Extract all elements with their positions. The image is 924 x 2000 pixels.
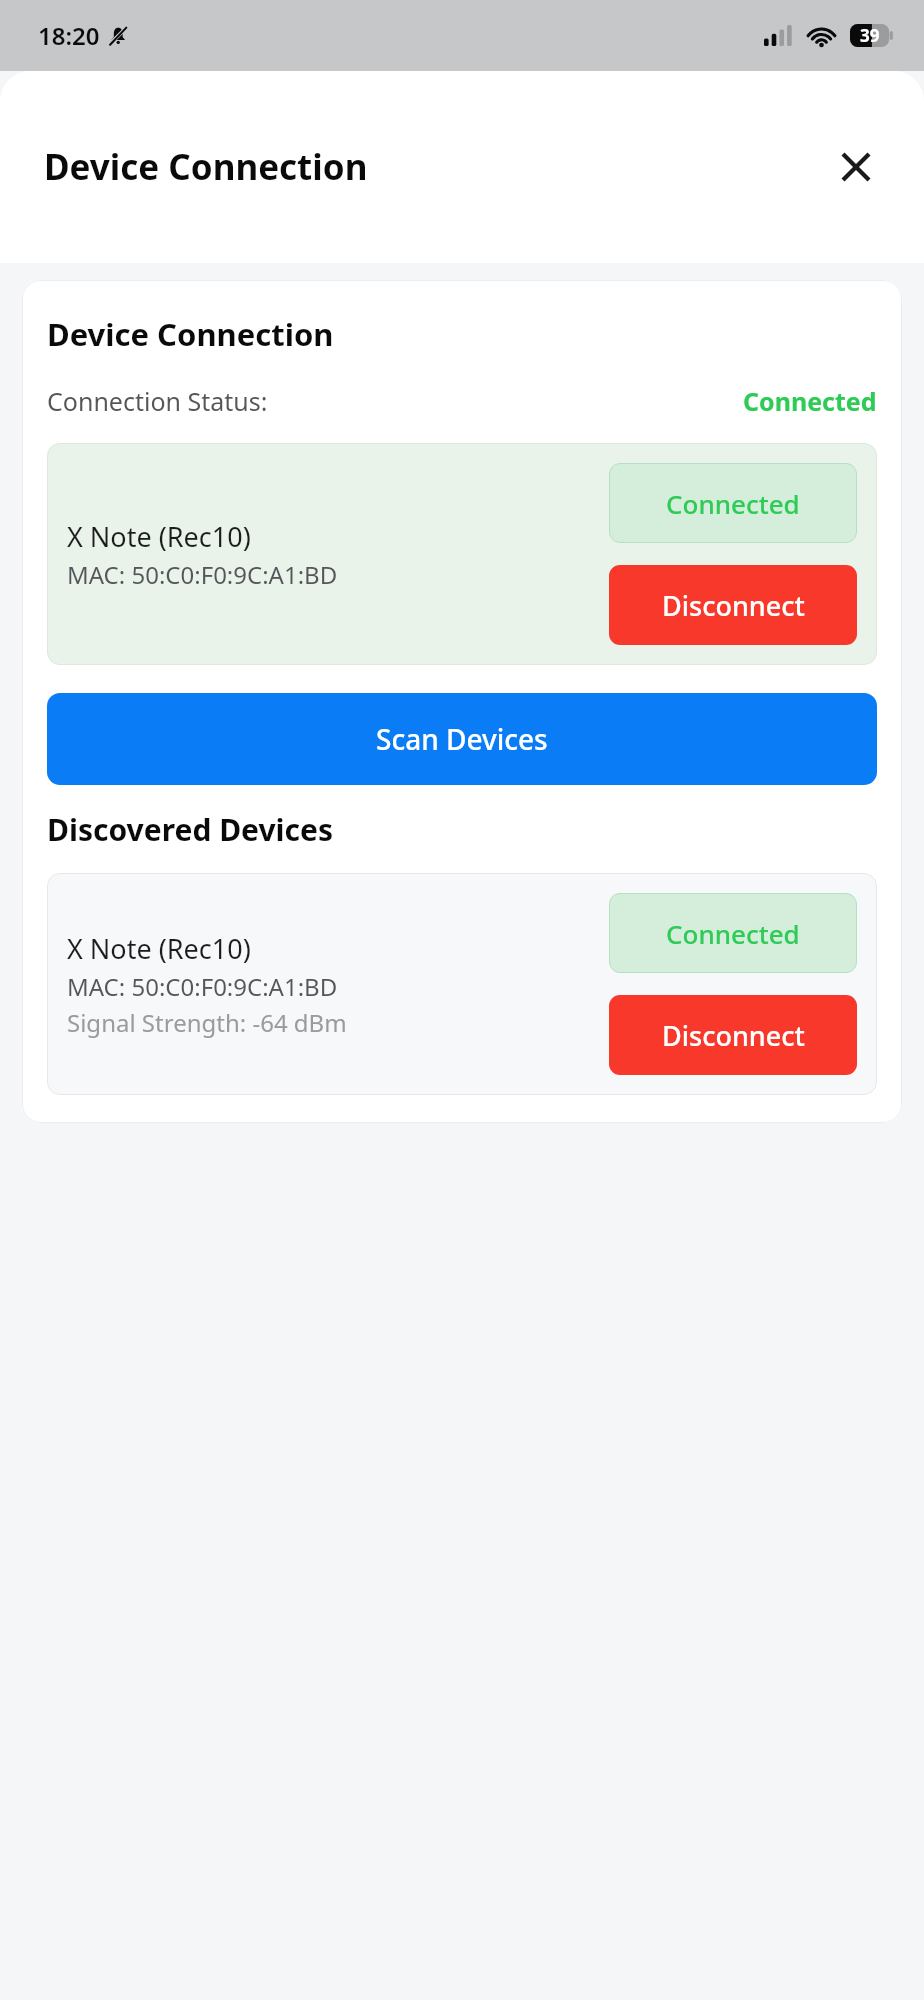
button[interactable]: X Note (Rec10) <box>47 443 877 665</box>
button[interactable]: Connected <box>609 893 857 973</box>
staticText: Scan Devices <box>376 720 548 758</box>
staticText: 18:20 <box>38 19 100 52</box>
staticText: X Note (Rec10) <box>67 930 251 967</box>
staticText: Discovered Devices <box>47 809 333 850</box>
staticText: Connected <box>743 384 877 418</box>
button[interactable]: Scan Devices <box>47 693 877 785</box>
staticText: Device Connection <box>44 143 368 191</box>
button[interactable]: Connected <box>609 463 857 543</box>
staticText: Disconnect <box>662 587 805 624</box>
button[interactable]: Disconnect <box>609 995 857 1075</box>
staticText: MAC: 50:C0:F0:9C:A1:BD <box>67 970 338 1003</box>
staticText: Device Connection <box>47 313 334 355</box>
staticText: X Note (Rec10) <box>67 518 251 555</box>
button[interactable]: Close <box>828 139 884 195</box>
button[interactable]: Disconnect <box>609 565 857 645</box>
staticText: Disconnect <box>662 1017 805 1054</box>
staticText: MAC: 50:C0:F0:9C:A1:BD <box>67 558 338 591</box>
button[interactable]: X Note (Rec10) <box>47 873 877 1095</box>
staticText: Connected <box>666 486 800 521</box>
staticText: 39 <box>860 24 880 47</box>
staticText: Connected <box>666 916 800 951</box>
staticText: Signal Strength: -64 dBm <box>67 1006 347 1039</box>
staticText: Connection Status: <box>47 384 268 418</box>
